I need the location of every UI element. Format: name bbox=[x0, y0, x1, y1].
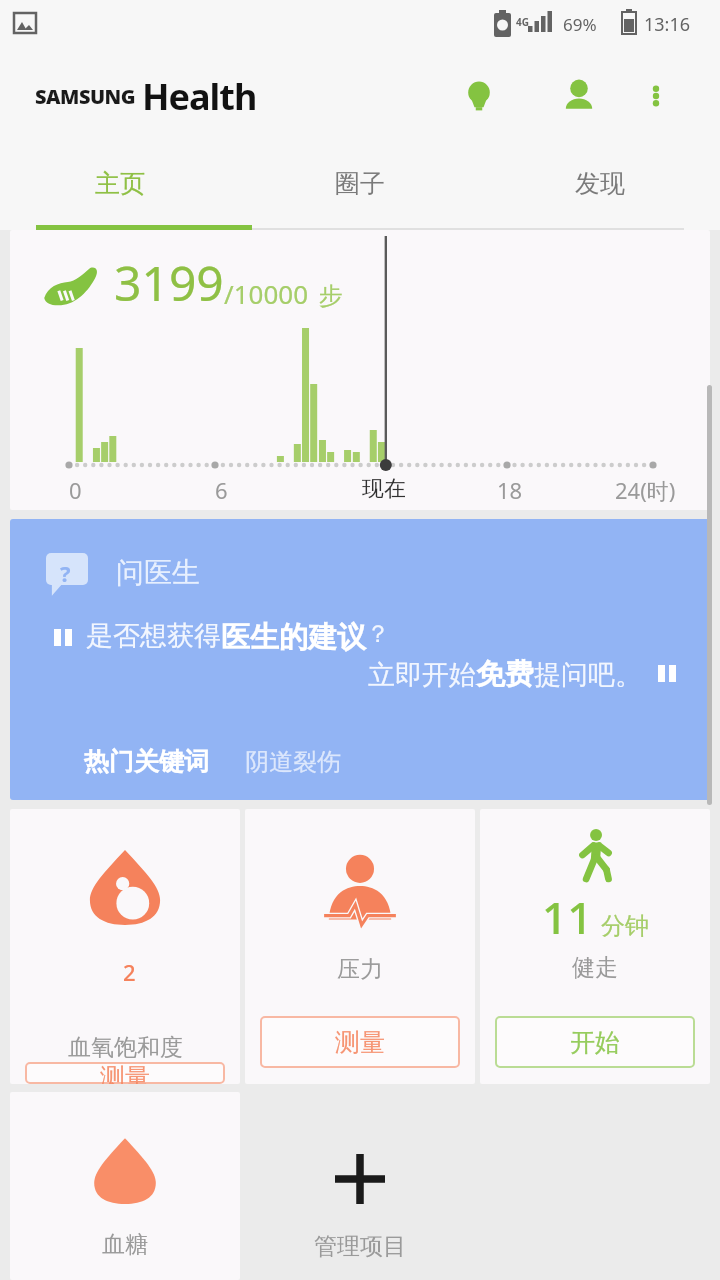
button[interactable]: More options bbox=[631, 71, 681, 121]
staticText: 13:16 bbox=[644, 12, 691, 37]
staticText: 69% bbox=[563, 13, 597, 36]
staticText: SAMSUNG bbox=[35, 83, 136, 110]
button[interactable]: 开始 bbox=[495, 1016, 695, 1068]
staticText: 3199 bbox=[114, 250, 224, 315]
staticText: 血氧饱和度 bbox=[68, 1033, 183, 1062]
button[interactable]: 3199 bbox=[10, 230, 710, 510]
staticText: 立即开始 bbox=[368, 658, 476, 692]
staticText: 24(时) bbox=[615, 475, 676, 505]
button[interactable]: Profile bbox=[551, 68, 607, 124]
staticText: 阴道裂伤 bbox=[245, 747, 341, 777]
staticText: 健走 bbox=[572, 953, 618, 982]
button[interactable]: ? bbox=[10, 519, 710, 800]
staticText: 热门关键词 bbox=[84, 746, 209, 777]
button[interactable]: 发现 bbox=[480, 144, 720, 230]
staticText: 11 bbox=[542, 887, 593, 947]
staticText: 测量 bbox=[100, 1062, 150, 1084]
button[interactable]: 测量 bbox=[260, 1016, 460, 1068]
button[interactable]: 测量 bbox=[25, 1062, 225, 1084]
staticText: 免费 bbox=[476, 656, 534, 693]
staticText: 压力 bbox=[337, 955, 383, 984]
staticText: 18 bbox=[497, 475, 523, 505]
staticText: 发现 bbox=[575, 168, 625, 199]
button[interactable]: Tips bbox=[451, 68, 507, 124]
staticText: 开始 bbox=[570, 1027, 620, 1058]
staticText: 主页 bbox=[95, 168, 145, 199]
staticText: 0 bbox=[69, 475, 82, 505]
staticText: 现在 bbox=[362, 475, 406, 503]
button[interactable]: 血糖 bbox=[10, 1092, 240, 1280]
button[interactable]: 11 bbox=[480, 809, 710, 1084]
staticText: ？ bbox=[366, 619, 390, 649]
button[interactable]: 圈子 bbox=[240, 144, 480, 230]
staticText: 问医生 bbox=[116, 555, 200, 590]
button[interactable]: 阴道裂伤 bbox=[245, 747, 341, 777]
staticText: 测量 bbox=[335, 1027, 385, 1058]
staticText: 是否想获得 bbox=[86, 619, 221, 653]
staticText: ? bbox=[60, 558, 71, 588]
staticText: 步 bbox=[319, 281, 343, 311]
staticText: 2 bbox=[123, 957, 136, 987]
staticText: 提问吧。 bbox=[534, 658, 642, 692]
button[interactable]: 管理项目 bbox=[245, 1092, 475, 1280]
staticText: 血糖 bbox=[102, 1230, 148, 1259]
staticText: 圈子 bbox=[335, 168, 385, 199]
staticText: /10000 bbox=[224, 276, 309, 311]
button[interactable]: 2 bbox=[10, 809, 240, 1084]
staticText: 医生的建议 bbox=[221, 619, 366, 656]
staticText: Health bbox=[142, 72, 257, 121]
staticText: 分钟 bbox=[601, 911, 649, 941]
button[interactable]: 主页 bbox=[0, 144, 240, 230]
staticText: 管理项目 bbox=[314, 1232, 406, 1261]
staticText: 6 bbox=[215, 475, 228, 505]
button[interactable]: 压力 bbox=[245, 809, 475, 1084]
staticText: 4G bbox=[516, 15, 529, 29]
